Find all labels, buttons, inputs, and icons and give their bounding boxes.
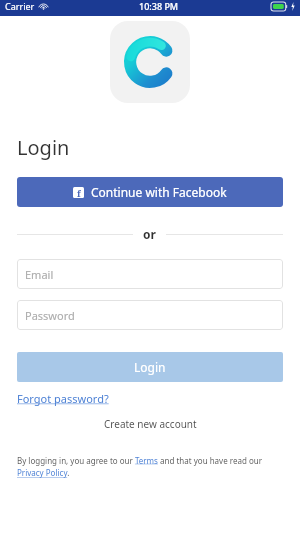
button[interactable]: Email	[17, 259, 283, 289]
button[interactable]: f	[17, 177, 283, 207]
button[interactable]: Login	[17, 352, 283, 382]
button[interactable]: Forgot password?	[17, 391, 109, 406]
staticText: f	[77, 187, 81, 198]
button[interactable]: Create new account	[104, 417, 197, 431]
staticText: Password	[25, 308, 75, 323]
staticText: or	[143, 226, 156, 242]
staticText: Email	[25, 267, 54, 282]
staticText: Continue with Facebook	[91, 184, 227, 200]
staticText: Login	[17, 134, 70, 161]
staticText: Login	[134, 359, 166, 375]
staticText: Carrier	[5, 0, 35, 12]
button[interactable]: By logging in, you agree to our Terms an…	[17, 455, 283, 479]
button[interactable]: Password	[17, 300, 283, 330]
staticText: 10:38 PM	[139, 0, 179, 12]
